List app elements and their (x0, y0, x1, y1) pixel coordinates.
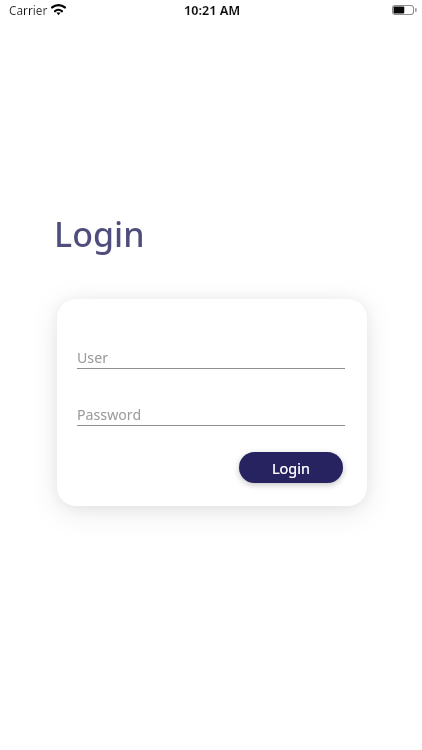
staticText: Login (272, 458, 310, 478)
other: Wi-Fi (51, 4, 66, 15)
other: Battery (392, 5, 417, 15)
staticText: Carrier (9, 2, 48, 18)
staticText: User (77, 348, 109, 367)
button[interactable]: Login (239, 452, 343, 483)
staticText: 10:21 AM (184, 2, 241, 19)
staticText: Password (77, 405, 142, 424)
staticText: Login (54, 211, 145, 257)
